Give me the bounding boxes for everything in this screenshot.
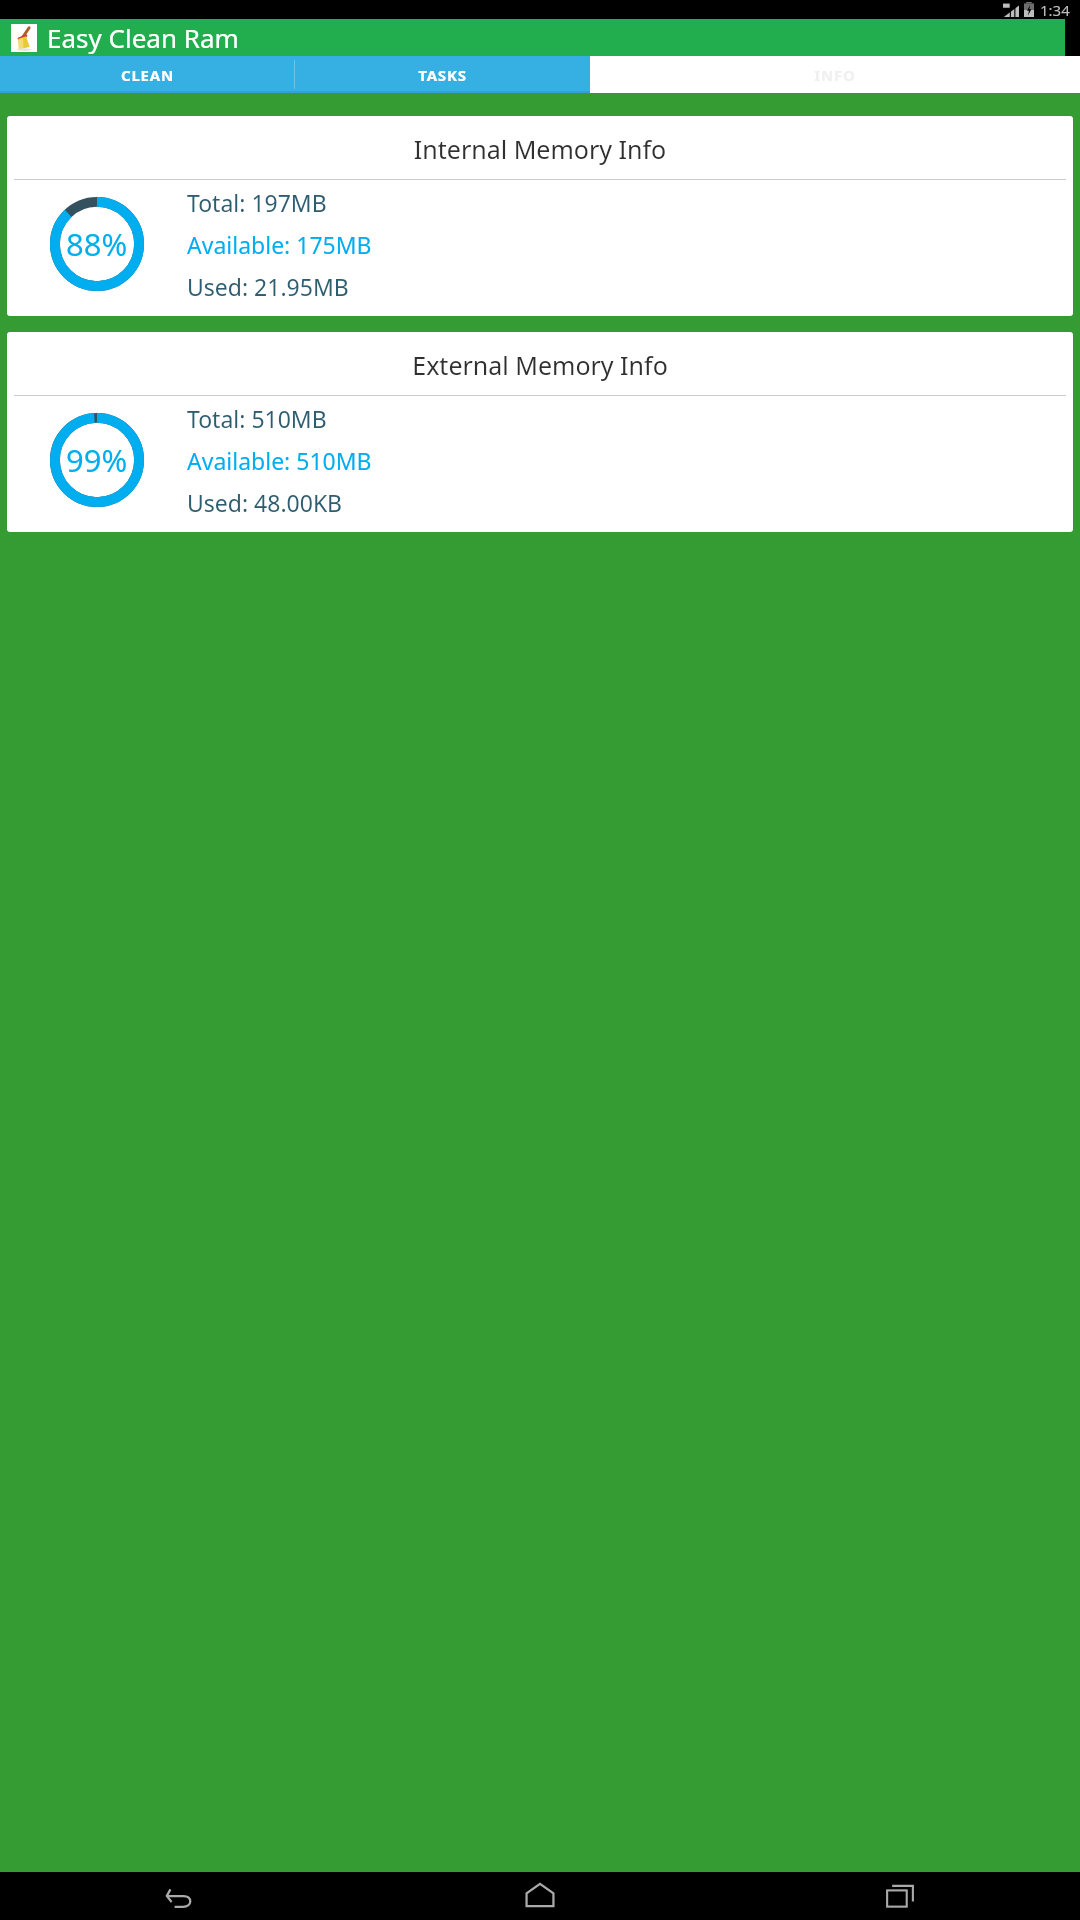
staticText: Used: 21.95MB: [187, 271, 349, 302]
staticText: 99%: [66, 439, 128, 481]
staticText: Total: 510MB: [187, 403, 327, 434]
staticText: Internal Memory Info: [7, 132, 1073, 166]
staticText: Used: 48.00KB: [187, 487, 343, 518]
staticText: TASKS: [418, 65, 467, 85]
staticText: CLEAN: [121, 65, 174, 85]
button[interactable]: Internal Memory Info: [7, 116, 1073, 316]
staticText: External Memory Info: [7, 348, 1073, 382]
button[interactable]: CLEAN: [0, 56, 294, 93]
staticText: Available: 510MB: [187, 445, 372, 476]
button[interactable]: TASKS: [295, 56, 590, 93]
staticText: Easy Clean Ram: [47, 20, 239, 55]
staticText: INFO: [814, 65, 856, 85]
staticText: Total: 197MB: [187, 187, 327, 218]
button[interactable]: Back: [0, 1872, 360, 1920]
button[interactable]: External Memory Info: [7, 332, 1073, 532]
button[interactable]: Recent apps: [720, 1872, 1080, 1920]
staticText: 1:34: [1040, 0, 1070, 19]
staticText: 88%: [66, 223, 128, 265]
button[interactable]: Home: [360, 1872, 720, 1920]
staticText: Available: 175MB: [187, 229, 372, 260]
